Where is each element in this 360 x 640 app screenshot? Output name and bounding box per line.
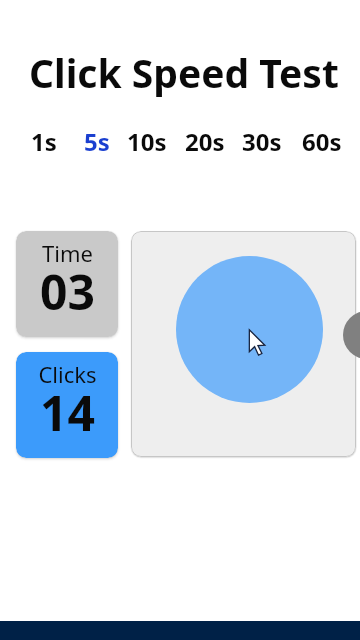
button[interactable]: Click here	[131, 231, 356, 457]
button[interactable]: 5s	[77, 121, 117, 159]
staticText: 03	[40, 259, 95, 324]
staticText: Time	[42, 238, 93, 268]
button[interactable]: 60s	[295, 121, 349, 159]
button[interactable]: 30s	[235, 121, 289, 159]
button[interactable]: Clicks	[16, 352, 118, 458]
staticText: Clicks	[38, 359, 97, 389]
staticText: Click Speed Test	[29, 46, 339, 99]
staticText: 10s	[127, 125, 167, 155]
staticText: 20s	[185, 125, 225, 155]
button[interactable]: 10s	[120, 121, 174, 159]
staticText: 14	[40, 380, 95, 445]
button[interactable]: Time	[16, 231, 118, 337]
button[interactable]: 1s	[24, 121, 64, 159]
button[interactable]: Next	[343, 311, 360, 359]
staticText: 1s	[31, 125, 57, 155]
button[interactable]: 20s	[178, 121, 232, 159]
staticText: 5s	[84, 125, 110, 155]
staticText: 30s	[242, 125, 282, 155]
staticText: 60s	[302, 125, 342, 155]
